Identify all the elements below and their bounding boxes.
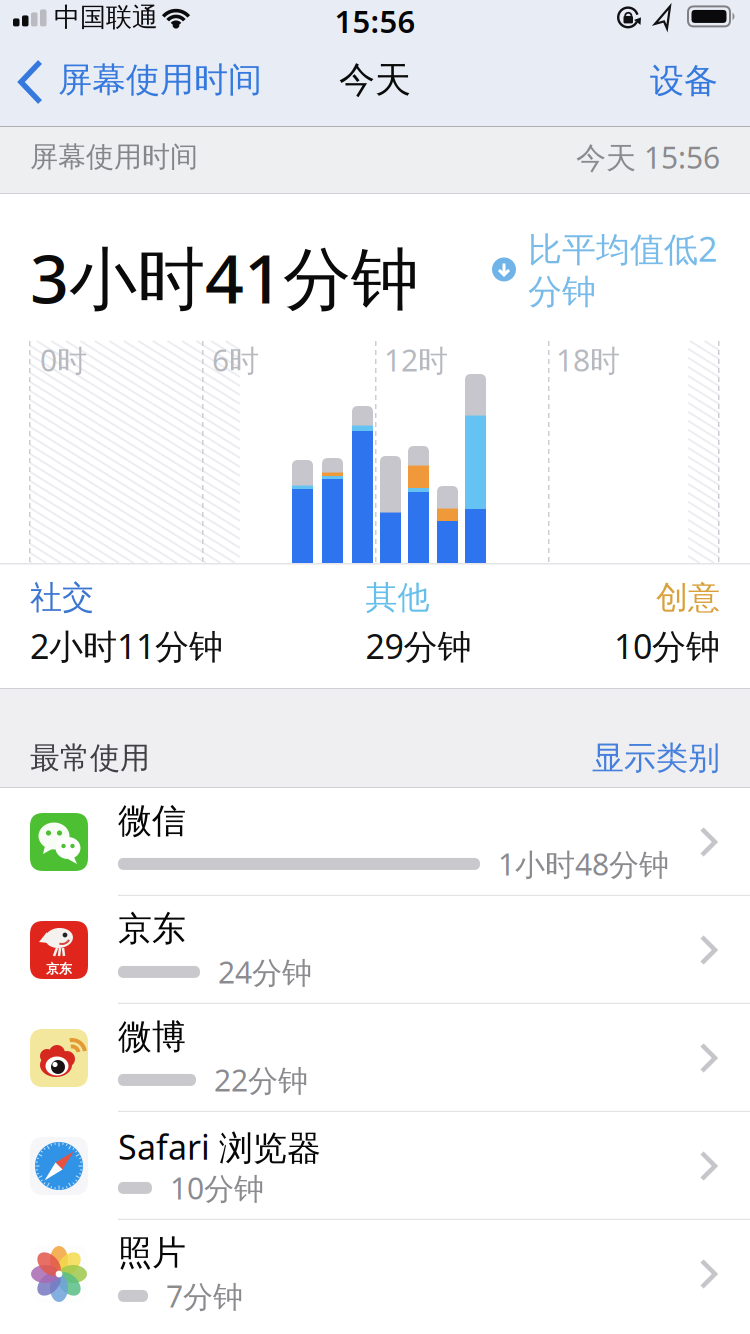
staticText: 0时: [40, 340, 87, 380]
staticText: 设备: [650, 60, 718, 102]
staticText: 2小时11分钟: [30, 623, 223, 668]
staticText: 微信: [118, 800, 186, 842]
button[interactable]: 照片: [0, 1220, 750, 1328]
staticText: 22分钟: [214, 1060, 308, 1100]
staticText: 10分钟: [170, 1168, 264, 1208]
staticText: 比平均值低2分钟: [528, 226, 717, 313]
staticText: 10分钟: [614, 623, 720, 668]
staticText: 京东: [46, 961, 72, 977]
staticText: 京东: [118, 908, 186, 950]
staticText: 社交: [30, 578, 94, 617]
staticText: 显示类别: [592, 738, 720, 778]
staticText: 15:56: [334, 0, 415, 42]
staticText: Safari 浏览器: [118, 1124, 321, 1169]
staticText: 屏幕使用时间: [58, 59, 262, 101]
staticText: 照片: [118, 1232, 186, 1274]
staticText: 中国联通: [54, 1, 158, 33]
staticText: 6时: [212, 340, 259, 380]
button[interactable]: 微信: [0, 788, 750, 896]
staticText: 3小时41分钟: [30, 232, 419, 322]
staticText: 其他: [365, 578, 429, 617]
staticText: 29分钟: [365, 623, 471, 668]
button[interactable]: 微博: [0, 1004, 750, 1112]
button[interactable]: Safari 浏览器: [0, 1112, 750, 1220]
staticText: 24分钟: [218, 952, 312, 992]
staticText: 微博: [118, 1016, 186, 1058]
staticText: 12时: [384, 340, 448, 380]
staticText: 创意: [656, 578, 720, 617]
button[interactable]: 设备: [650, 60, 718, 102]
button[interactable]: 京东: [0, 896, 750, 1004]
button[interactable]: 屏幕使用时间: [0, 58, 256, 106]
staticText: 今天: [339, 58, 411, 102]
staticText: 7分钟: [166, 1276, 243, 1316]
staticText: 今天 15:56: [576, 137, 720, 177]
staticText: 18时: [556, 340, 620, 380]
button[interactable]: 显示类别: [592, 738, 720, 778]
staticText: 最常使用: [30, 740, 150, 776]
staticText: 屏幕使用时间: [30, 140, 198, 174]
staticText: 1小时48分钟: [498, 844, 669, 884]
